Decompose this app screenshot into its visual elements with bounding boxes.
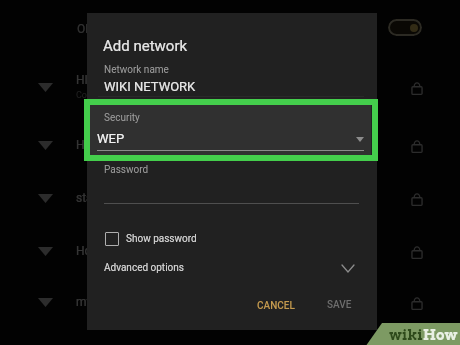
staticText: WIKI NETWORK xyxy=(104,79,196,94)
button[interactable] xyxy=(0,277,460,329)
button[interactable] xyxy=(0,62,460,114)
staticText: Connected xyxy=(76,90,120,101)
button[interactable]: CANCEL xyxy=(249,294,303,318)
staticText: Password xyxy=(104,164,149,176)
staticText: Advanced options xyxy=(104,262,184,274)
staticText: Add network xyxy=(103,37,188,55)
staticText: starbucks xyxy=(76,191,129,205)
staticText: CANCEL xyxy=(257,300,295,312)
button[interactable] xyxy=(88,104,371,155)
staticText: How xyxy=(423,327,458,344)
button[interactable]: Wi-Fi toggle xyxy=(0,14,460,42)
button[interactable] xyxy=(0,226,460,278)
staticText: Show password xyxy=(126,233,197,245)
staticText: ON xyxy=(77,22,94,36)
staticText: Home-5G xyxy=(76,244,127,258)
button[interactable] xyxy=(0,120,460,172)
staticText: HIKA-33 xyxy=(76,138,120,152)
button[interactable] xyxy=(101,228,273,252)
staticText: HIOMEnet xyxy=(76,73,131,87)
button[interactable] xyxy=(0,173,460,225)
staticText: Security xyxy=(104,112,140,124)
button[interactable] xyxy=(101,258,364,280)
staticText: Network name xyxy=(104,64,169,76)
staticText: WEP xyxy=(97,131,125,146)
staticText: SAVE xyxy=(327,299,352,311)
staticText: my-wifi xyxy=(76,295,115,309)
button[interactable]: SAVE xyxy=(319,293,360,317)
staticText: wiki xyxy=(389,327,423,344)
